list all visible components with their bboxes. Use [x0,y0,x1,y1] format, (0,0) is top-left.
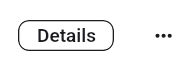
button[interactable]: More options [147,19,177,51]
staticText: Details [37,24,96,46]
button[interactable]: Details [18,20,114,51]
